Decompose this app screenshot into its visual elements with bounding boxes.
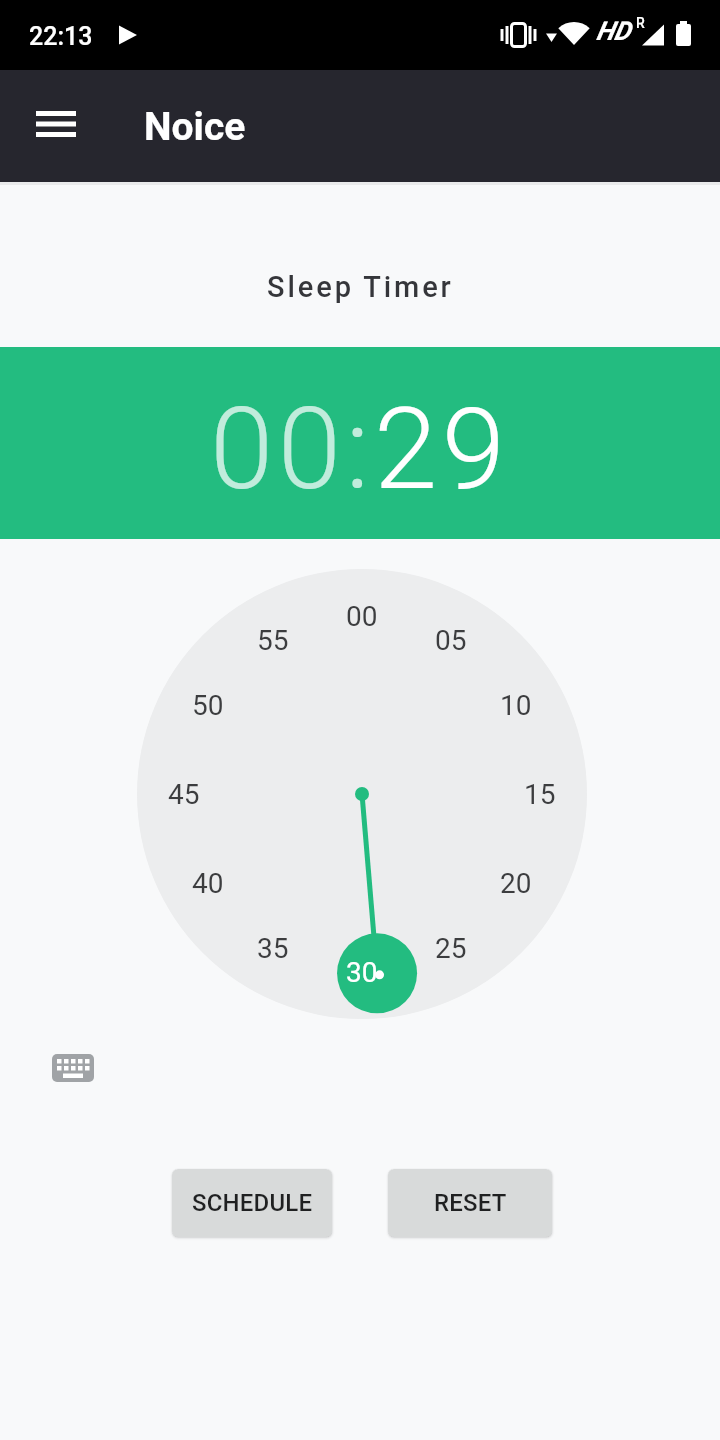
staticText: SCHEDULE bbox=[192, 1189, 313, 1217]
staticText: 22:13 bbox=[29, 22, 93, 51]
staticText: 30 bbox=[346, 956, 378, 989]
staticText: 29 bbox=[374, 382, 510, 516]
staticText: 00: bbox=[210, 382, 374, 516]
button[interactable] bbox=[52, 1054, 94, 1082]
staticText: 20 bbox=[500, 867, 532, 900]
staticText: 45 bbox=[168, 778, 200, 811]
button[interactable]: SCHEDULE bbox=[172, 1169, 332, 1237]
staticText: RESET bbox=[434, 1189, 507, 1217]
staticText: 15 bbox=[524, 778, 556, 811]
staticText: HD bbox=[596, 16, 631, 46]
staticText: Sleep Timer bbox=[267, 270, 454, 304]
button[interactable]: RESET bbox=[388, 1169, 552, 1237]
staticText: 00 bbox=[346, 600, 378, 633]
staticText: R bbox=[636, 15, 645, 31]
staticText: 10 bbox=[500, 689, 532, 722]
staticText: 55 bbox=[257, 624, 289, 657]
staticText: 50 bbox=[192, 689, 224, 722]
button[interactable] bbox=[137, 569, 587, 1019]
staticText: Noice bbox=[144, 104, 246, 150]
button[interactable] bbox=[24, 100, 88, 148]
staticText: 25 bbox=[435, 932, 467, 965]
staticText: 05 bbox=[435, 624, 467, 657]
staticText: 40 bbox=[192, 867, 224, 900]
staticText: 35 bbox=[257, 932, 289, 965]
